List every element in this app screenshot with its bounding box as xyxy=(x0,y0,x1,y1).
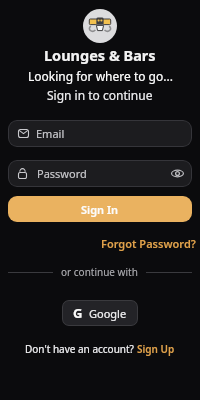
staticText: Looking for where to go... xyxy=(28,68,173,84)
button[interactable]: Password xyxy=(8,160,192,187)
button[interactable]: Email xyxy=(8,120,192,147)
staticText: Google xyxy=(89,306,127,321)
staticText: or continue with xyxy=(61,265,138,279)
staticText: Sign Up xyxy=(137,342,175,356)
staticText: G xyxy=(73,304,83,322)
staticText: Forgot Password? xyxy=(101,236,196,251)
button[interactable]: Don't have an account? xyxy=(25,342,175,356)
staticText: Email xyxy=(36,126,65,141)
button[interactable]: G xyxy=(62,300,138,326)
staticText: Password xyxy=(37,166,87,181)
staticText: Sign in to continue xyxy=(47,87,153,103)
button[interactable]: Forgot Password? xyxy=(101,236,196,251)
staticText: Sign In xyxy=(81,202,119,217)
staticText: Lounges & Bars xyxy=(44,45,156,65)
button[interactable]: Sign In xyxy=(8,196,192,222)
staticText: Don't have an account? xyxy=(25,342,137,356)
